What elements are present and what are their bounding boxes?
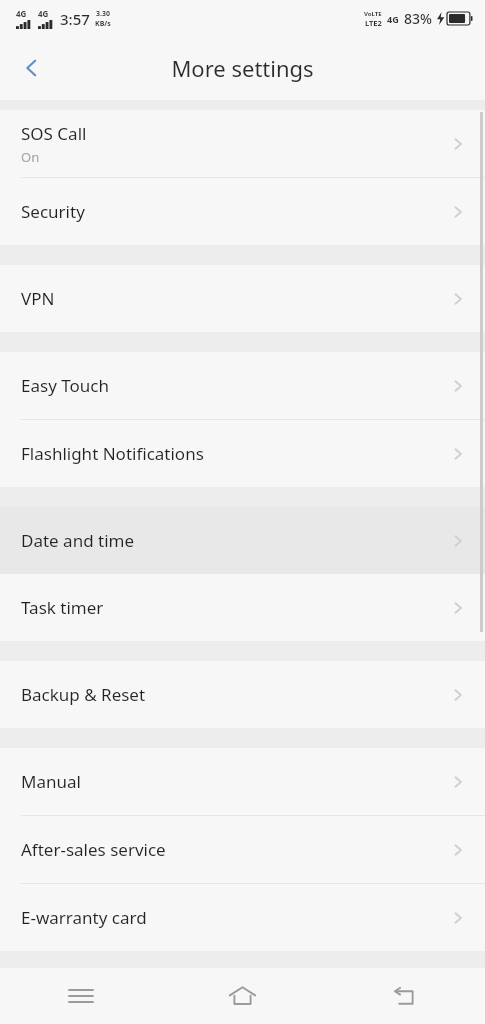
staticText: VPN xyxy=(21,287,55,310)
button[interactable]: Recent apps xyxy=(0,968,161,1024)
button[interactable]: E-warranty card xyxy=(0,884,485,951)
button[interactable]: Date and time xyxy=(0,507,485,574)
staticText: 4G xyxy=(38,8,49,19)
staticText: Date and time xyxy=(21,529,135,552)
button[interactable]: Flashlight Notifications xyxy=(0,420,485,487)
staticText: Backup & Reset xyxy=(21,683,146,706)
staticText: 3.30 xyxy=(96,9,110,19)
button[interactable]: Backup & Reset xyxy=(0,661,485,728)
staticText: VoLTE xyxy=(364,10,382,18)
staticText: 4G xyxy=(16,8,27,19)
staticText: 3:57 xyxy=(60,9,90,29)
staticText: Flashlight Notifications xyxy=(21,442,204,465)
staticText: Task timer xyxy=(21,596,104,619)
button[interactable]: Task timer xyxy=(0,574,485,641)
staticText: Manual xyxy=(21,770,81,793)
staticText: LTE2 xyxy=(365,18,382,28)
button[interactable]: VPN xyxy=(0,265,485,332)
button[interactable]: Back xyxy=(323,968,485,1024)
staticText: KB/s xyxy=(95,19,111,29)
button[interactable]: SOS Call xyxy=(0,110,485,177)
button[interactable]: After-sales service xyxy=(0,816,485,883)
staticText: On xyxy=(21,148,40,166)
staticText: Easy Touch xyxy=(21,374,109,397)
button[interactable]: Manual xyxy=(0,748,485,815)
staticText: SOS Call xyxy=(21,122,87,145)
button[interactable]: Back xyxy=(8,44,56,92)
button[interactable]: Security xyxy=(0,178,485,245)
staticText: 83% xyxy=(404,9,432,28)
staticText: After-sales service xyxy=(21,838,166,861)
staticText: E-warranty card xyxy=(21,906,147,929)
button[interactable]: Home xyxy=(161,968,323,1024)
staticText: More settings xyxy=(171,53,314,83)
button[interactable]: Easy Touch xyxy=(0,352,485,419)
staticText: 4G xyxy=(387,13,399,25)
staticText: Security xyxy=(21,200,85,223)
